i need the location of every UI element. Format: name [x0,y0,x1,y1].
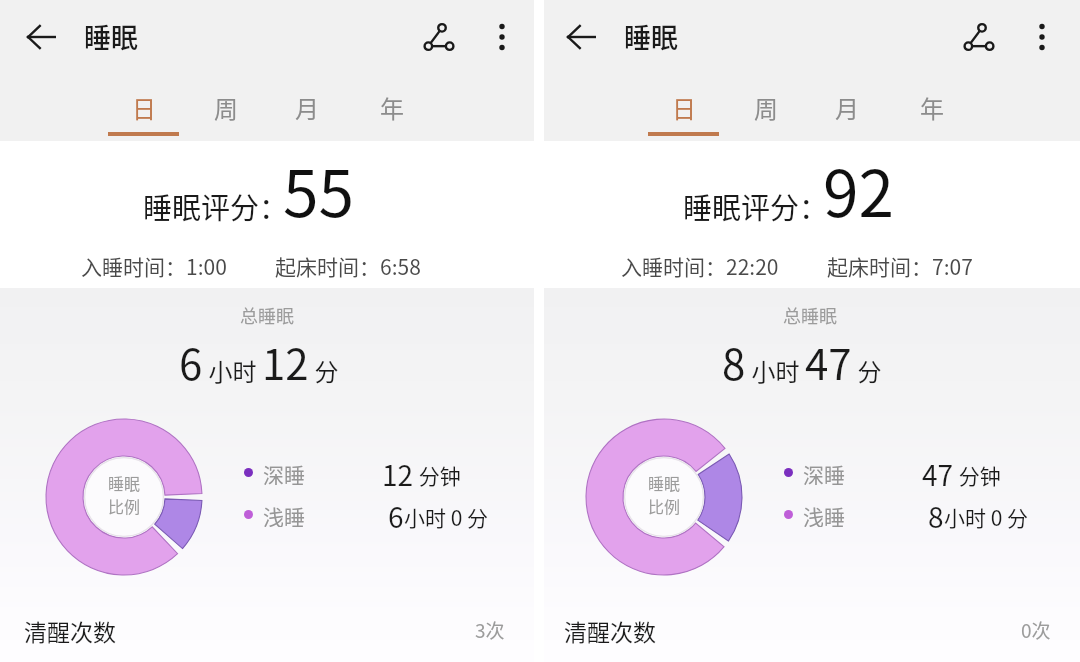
staticText: 比例 [648,494,681,517]
staticText: 6 [179,331,203,392]
staticText: 月 [835,90,859,125]
staticText: 起床时间：6:58 [275,251,421,281]
staticText: 分钟 [414,460,461,490]
staticText: 睡眠 [648,471,681,494]
button[interactable]: Back [16,12,66,62]
staticText: 睡眠 [624,17,678,56]
staticText: 睡眠 [108,471,141,494]
staticText: 清醒次数 [564,614,656,647]
staticText: 分 [852,353,882,388]
staticText: 47 [805,331,852,392]
button[interactable]: 清醒次数 [540,603,1080,657]
staticText: 浅睡 [803,501,845,527]
staticText: 入睡时间：1:00 [81,251,227,281]
staticText: 睡眠评分： [143,185,289,227]
staticText: 日 [132,90,156,125]
staticText: 周 [754,90,778,125]
button[interactable]: More options [1017,12,1067,62]
staticText: 睡眠评分： [683,185,829,227]
button[interactable]: 清醒次数 [0,603,534,657]
button[interactable]: 日 [103,80,183,136]
staticText: 月 [295,90,319,125]
button[interactable]: 深睡 [784,459,845,485]
staticText: 分钟 [954,460,1001,490]
staticText: 47 [922,454,954,494]
button[interactable]: Sleep ratio chart [44,417,204,577]
staticText: 小时 [203,353,262,388]
staticText: 0次 [1021,616,1051,644]
button[interactable]: More options [477,12,527,62]
button[interactable]: 浅睡 [784,501,845,527]
staticText: 起床时间：7:07 [827,251,973,281]
staticText: 年 [920,90,944,125]
button[interactable]: 周 [726,80,806,136]
button[interactable]: 日 [643,80,723,136]
staticText: 小时 [746,353,805,388]
staticText: 8 [928,496,944,536]
staticText: 周 [214,90,238,125]
staticText: 入睡时间：22:20 [621,251,779,281]
button[interactable]: 浅睡 [244,501,305,527]
button[interactable]: 深睡 [244,459,305,485]
button[interactable]: Share [954,12,1004,62]
staticText: 比例 [108,494,141,517]
staticText: 6 [388,496,404,536]
staticText: 3次 [475,616,505,644]
button[interactable]: 年 [892,80,972,136]
button[interactable]: Back [556,12,606,62]
staticText: 总睡眠 [240,302,294,328]
button[interactable]: Share [414,12,464,62]
button[interactable]: Sleep ratio chart [584,417,744,577]
staticText: 55 [283,143,355,236]
staticText: 清醒次数 [24,614,116,647]
staticText: 92 [823,143,895,236]
staticText: 深睡 [803,459,845,485]
staticText: 小时 0 分 [944,502,1029,532]
staticText: 小时 0 分 [404,502,489,532]
staticText: 12 [382,454,414,494]
staticText: 浅睡 [263,501,305,527]
staticText: 年 [380,90,404,125]
staticText: 8 [722,331,746,392]
staticText: 分 [309,353,339,388]
button[interactable]: 月 [267,80,347,136]
button[interactable]: 月 [807,80,887,136]
staticText: 深睡 [263,459,305,485]
staticText: 日 [672,90,696,125]
staticText: 睡眠 [84,17,138,56]
button[interactable]: 周 [186,80,266,136]
button[interactable]: 年 [352,80,432,136]
staticText: 总睡眠 [783,302,837,328]
staticText: 12 [262,331,309,392]
